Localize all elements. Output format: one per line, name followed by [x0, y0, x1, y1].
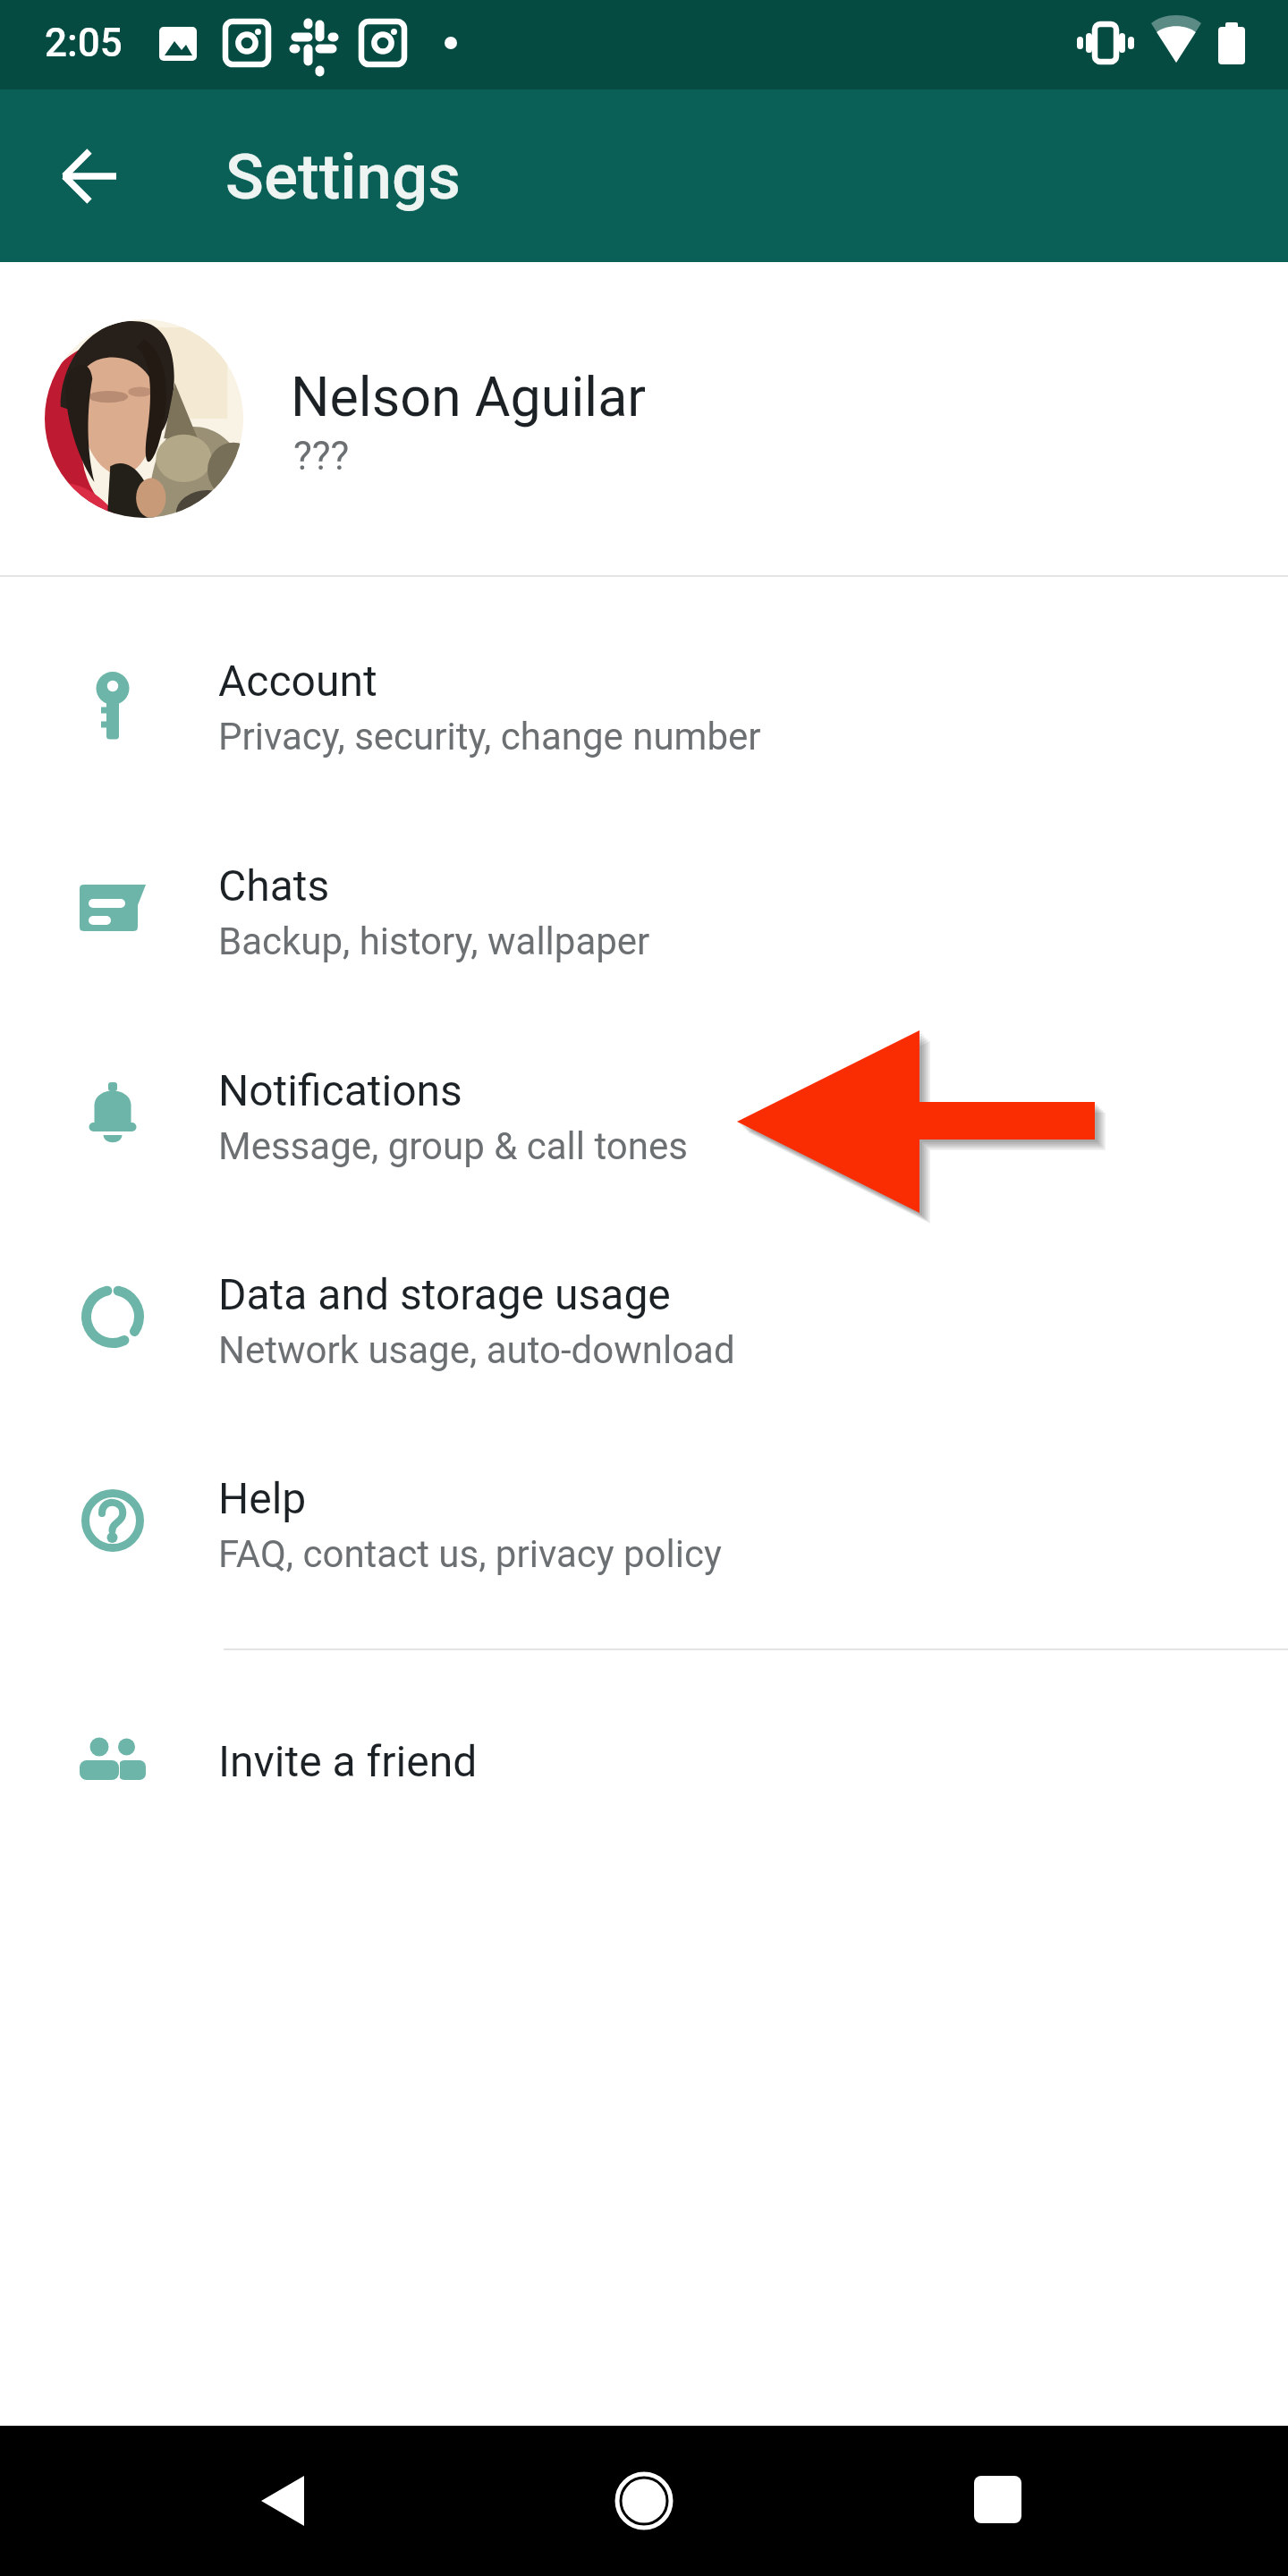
staticText: Settings	[225, 140, 461, 214]
staticText: Account	[218, 656, 377, 706]
staticText: FAQ, contact us, privacy policy	[218, 1532, 722, 1576]
staticText: 2:05	[45, 20, 123, 66]
staticText: Privacy, security, change number	[218, 715, 761, 758]
staticText: Network usage, auto-download	[218, 1328, 735, 1372]
staticText: Notifications	[218, 1065, 462, 1115]
staticText: Invite a friend	[218, 1736, 478, 1786]
staticText: Message, group & call tones	[218, 1124, 688, 1168]
staticText: Chats	[218, 860, 330, 911]
button[interactable]: Help	[0, 1427, 1288, 1614]
staticText: Backup, history, wallpaper	[218, 919, 650, 963]
button[interactable]: Back	[231, 2447, 338, 2555]
button[interactable]: Invite a friend	[0, 1682, 1288, 1869]
staticText: Nelson Aguilar	[291, 365, 646, 428]
staticText: Data and storage usage	[218, 1269, 671, 1319]
button[interactable]: Back	[38, 123, 146, 230]
button[interactable]: Recent apps	[945, 2447, 1053, 2555]
button[interactable]: Notifications	[0, 1023, 1288, 1211]
button[interactable]: Data and storage usage	[0, 1223, 1288, 1411]
staticText: ???	[293, 433, 350, 479]
button[interactable]: Nelson Aguilar	[0, 262, 1288, 575]
button[interactable]: Chats	[0, 821, 1288, 1009]
button[interactable]: Account	[0, 612, 1288, 800]
staticText: Help	[218, 1473, 307, 1523]
button[interactable]: Home	[590, 2447, 698, 2555]
